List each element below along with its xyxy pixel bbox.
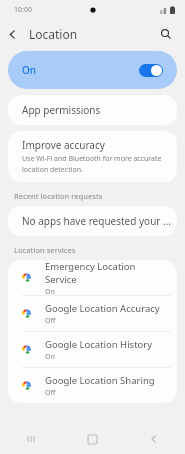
- staticText: On: [22, 63, 37, 77]
- button[interactable]: Recents: [0, 424, 61, 454]
- staticText: On: [45, 352, 55, 362]
- staticText: Google Location Accuracy: [45, 302, 160, 315]
- staticText: Recent location requests: [14, 191, 103, 201]
- staticText: Location services: [14, 245, 76, 255]
- button[interactable]: Back: [123, 424, 185, 454]
- staticText: Off: [45, 316, 56, 326]
- staticText: On: [45, 287, 55, 295]
- staticText: 10:00: [14, 5, 32, 15]
- staticText: Google Location History: [45, 338, 153, 351]
- button[interactable]: Google Location History: [8, 332, 177, 367]
- button[interactable]: Home: [61, 424, 123, 454]
- button[interactable]: No apps have requested your location..: [8, 206, 177, 236]
- button[interactable]: Improve accuracy: [8, 131, 177, 182]
- staticText: Location: [29, 26, 78, 42]
- staticText: App permissions: [22, 103, 101, 117]
- button[interactable]: Emergency Location Service: [8, 260, 177, 295]
- staticText: Use Wi-Fi and Bluetooth for more accurat…: [22, 154, 165, 174]
- button[interactable]: Google Location Sharing: [8, 368, 177, 403]
- button[interactable]: App permissions: [8, 95, 177, 125]
- staticText: Off: [45, 388, 56, 398]
- staticText: No apps have requested your location..: [22, 214, 171, 228]
- button[interactable]: Back: [0, 22, 24, 46]
- staticText: Emergency Location Service: [45, 260, 167, 286]
- button[interactable]: Google Location Accuracy: [8, 296, 177, 331]
- staticText: Improve accuracy: [22, 138, 105, 152]
- staticText: Google Location Sharing: [45, 374, 155, 387]
- button[interactable]: On: [8, 51, 177, 89]
- button[interactable]: Search: [155, 23, 177, 45]
